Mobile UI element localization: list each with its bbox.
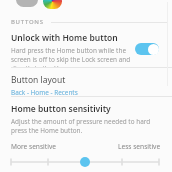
staticText: Button layout xyxy=(11,74,66,86)
staticText: Less sensitive xyxy=(118,142,161,151)
staticText: screen is off to skip the Lock screen an… xyxy=(11,55,132,64)
button[interactable]: Home button sensitivity slider xyxy=(0,155,172,169)
staticText: directly to the Home screen. xyxy=(11,64,96,67)
staticText: Home button sensitivity xyxy=(11,103,111,115)
button[interactable]: Button layout xyxy=(0,68,172,96)
button[interactable]: Unlock with Home button, on xyxy=(135,43,159,55)
staticText: BUTTONS xyxy=(11,18,44,26)
button[interactable]: Colour style xyxy=(43,0,62,9)
staticText: Unlock with Home button xyxy=(11,32,118,44)
staticText: Adjust the amount of pressure needed to … xyxy=(11,117,151,126)
button[interactable]: Unlock with Home button xyxy=(0,29,172,67)
staticText: More sensitive xyxy=(11,142,56,151)
staticText: Hard press the Home button while the xyxy=(11,46,126,55)
button[interactable]: Grey style xyxy=(16,0,38,7)
staticText: press the Home button. xyxy=(11,126,83,135)
staticText: Back - Home - Recents xyxy=(11,88,78,96)
